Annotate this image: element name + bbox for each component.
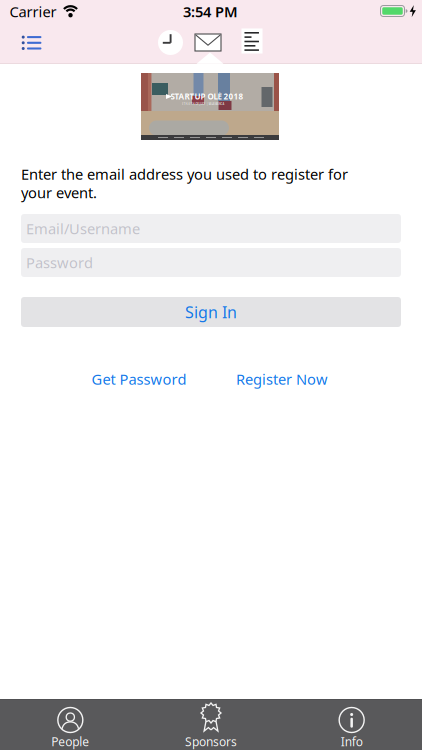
staticText: Get Password [91,369,186,389]
staticText: Carrier [9,2,56,21]
staticText: 3:54 PM [183,2,238,21]
staticText: your event. [21,183,97,202]
button[interactable]: Schedule [152,25,188,59]
button[interactable]: Register Now [236,369,328,389]
staticText: Email/Username [26,219,140,238]
button[interactable]: Menu [9,24,53,60]
staticText: Register Now [236,369,328,389]
button[interactable]: Notes [234,24,270,58]
button[interactable]: Get Password [91,369,186,389]
staticText: 5TH-6TH OF JULY | SALAMANCA [181,102,224,106]
button[interactable]: People [0,699,141,750]
button[interactable]: Sign In [21,297,401,327]
staticText: Sign In [185,301,237,323]
staticText: STARTUP OLÉ 2018 [170,91,243,102]
staticText: Info [341,733,363,749]
button[interactable]: Sponsors [141,699,281,750]
staticText: Enter the email address you used to regi… [21,164,348,184]
button[interactable]: Info [281,699,422,750]
staticText: Password [26,253,93,272]
staticText: People [51,733,89,749]
button[interactable]: Messages [190,25,226,59]
staticText: Sponsors [185,733,237,749]
